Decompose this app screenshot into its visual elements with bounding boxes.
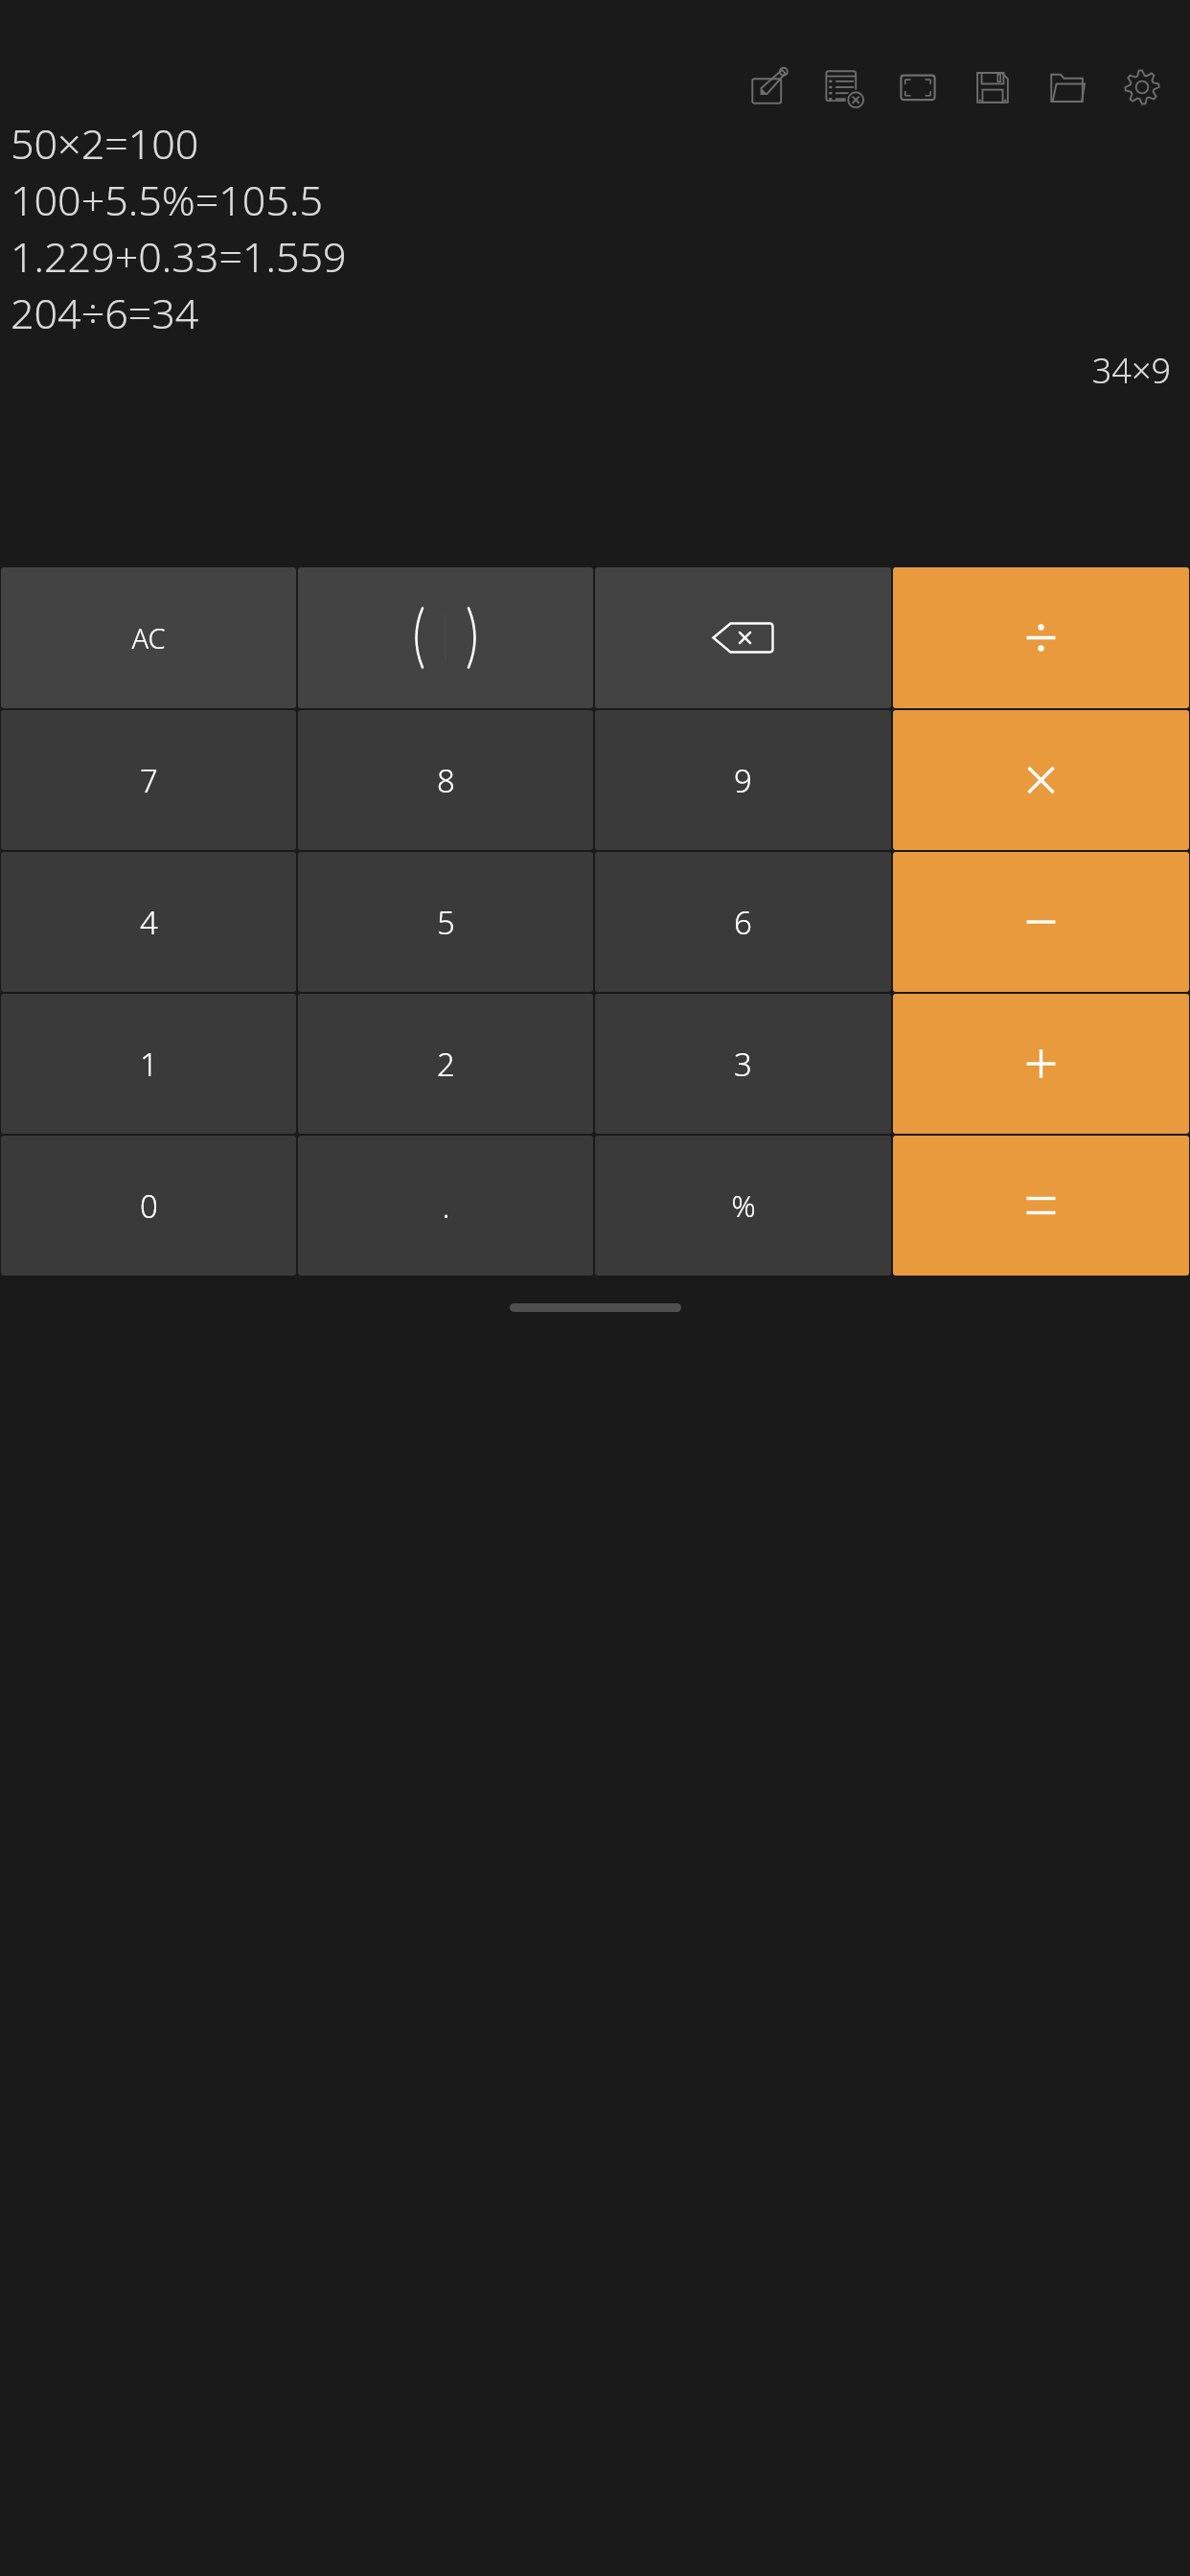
staticText: 2 [437, 1043, 455, 1086]
staticText: 4 [140, 901, 158, 944]
staticText: 3 [734, 1043, 752, 1086]
staticText: % [731, 1185, 756, 1226]
button[interactable]: Clear history [815, 59, 870, 114]
staticText: 1.229+0.33=1.559 [11, 228, 1171, 285]
staticText: 7 [140, 759, 158, 802]
button[interactable]: 5 [298, 852, 593, 992]
staticText: 1 [140, 1043, 158, 1086]
button[interactable]: Divide [893, 567, 1189, 708]
staticText: 6 [734, 901, 752, 944]
button[interactable]: 2 [298, 994, 593, 1134]
button[interactable]: Fullscreen [890, 59, 945, 114]
button[interactable]: 9 [595, 710, 891, 850]
button[interactable]: Equals [893, 1136, 1189, 1276]
staticText: 100+5.5%=105.5 [11, 172, 1171, 228]
staticText: 0 [140, 1184, 158, 1228]
staticText: AC [131, 619, 166, 656]
button[interactable]: Percent [595, 1136, 891, 1276]
staticText: 50×2=100 [11, 115, 1171, 172]
button[interactable]: Open [1040, 59, 1094, 114]
button[interactable]: 3 [595, 994, 891, 1134]
button[interactable]: Settings [1114, 59, 1169, 114]
button[interactable]: 1 [1, 994, 296, 1134]
button[interactable]: Save [965, 59, 1019, 114]
button[interactable]: 4 [1, 852, 296, 992]
button[interactable]: 8 [298, 710, 593, 850]
button[interactable]: Minus [893, 852, 1189, 992]
staticText: 8 [437, 759, 455, 802]
staticText: 34×9 [11, 347, 1171, 394]
button[interactable]: 7 [1, 710, 296, 850]
staticText: 5 [437, 901, 455, 944]
button[interactable]: Parentheses [298, 567, 593, 708]
button[interactable]: Multiply [893, 710, 1189, 850]
button[interactable]: AC [1, 567, 296, 708]
button[interactable]: Backspace [595, 567, 891, 708]
button[interactable]: Plus [893, 994, 1189, 1134]
button[interactable]: 0 [1, 1136, 296, 1276]
staticText: 9 [734, 759, 752, 802]
staticText: . [442, 1184, 450, 1228]
button[interactable]: New note [741, 59, 795, 114]
staticText: 204÷6=34 [11, 285, 1171, 341]
button[interactable]: 6 [595, 852, 891, 992]
